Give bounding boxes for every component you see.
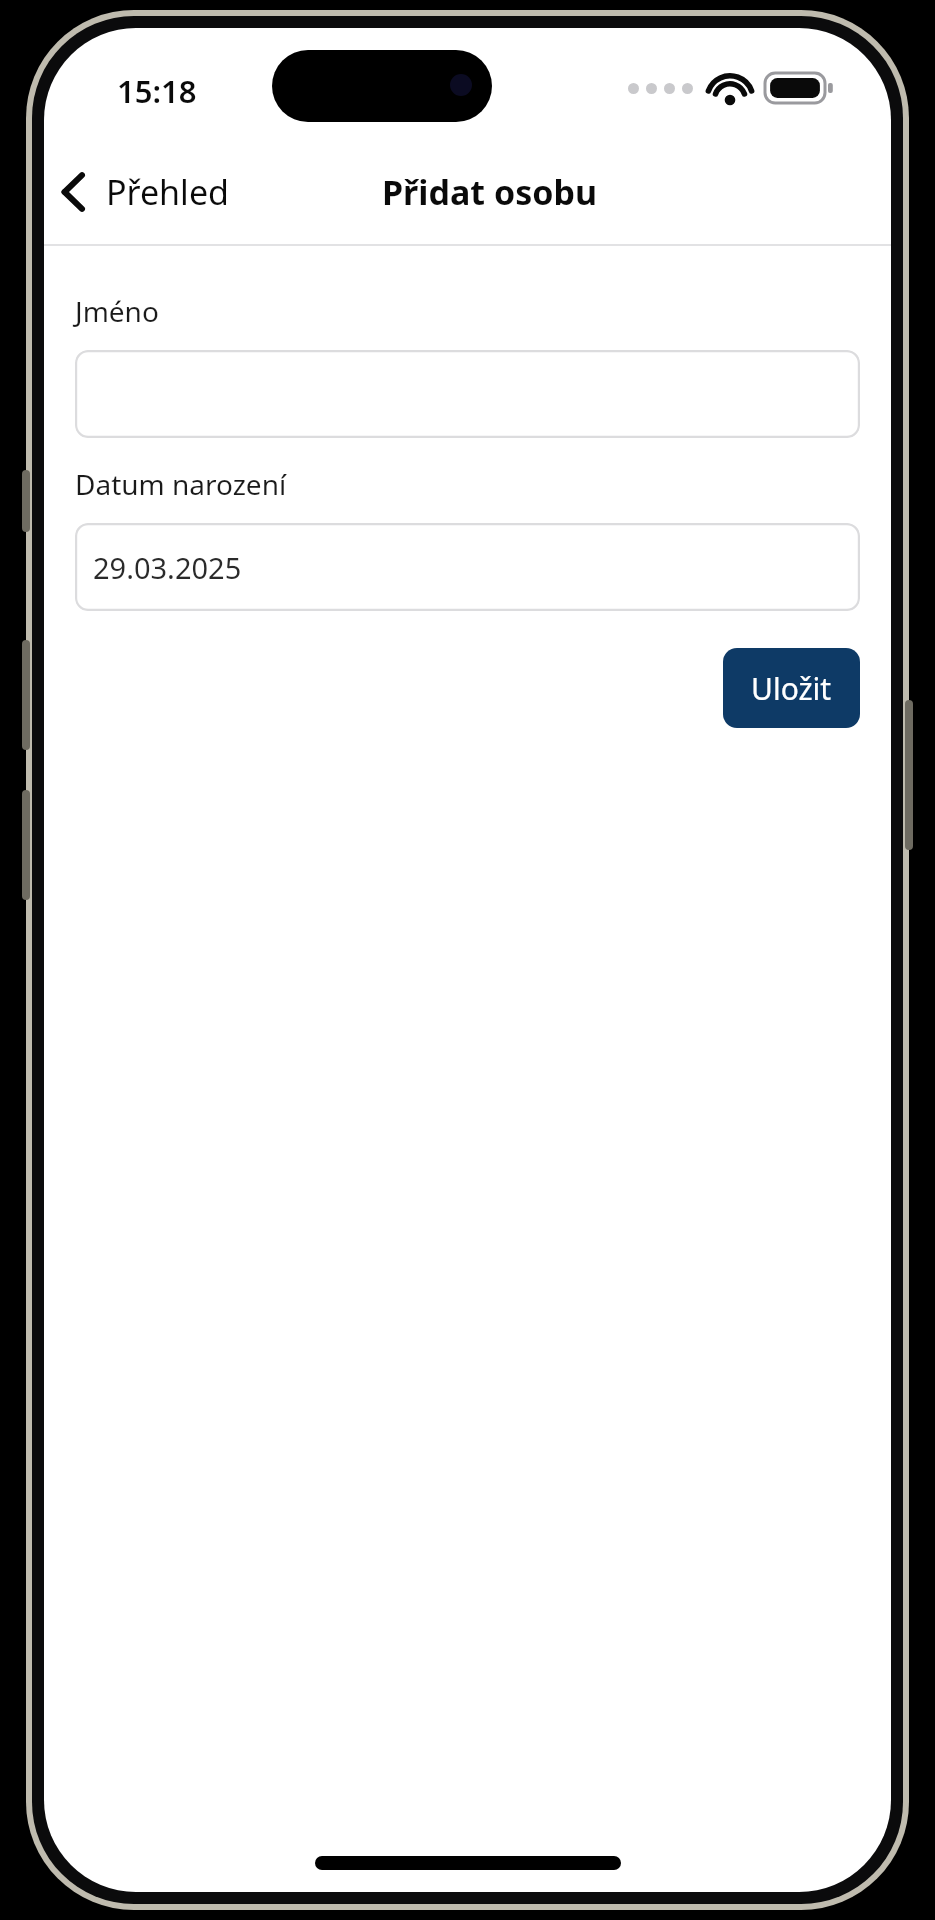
- staticText: Jméno: [75, 292, 159, 330]
- staticText: 15:18: [117, 70, 197, 112]
- staticText: Přidat osobu: [382, 169, 598, 215]
- button[interactable]: [75, 350, 860, 438]
- button[interactable]: Přehled: [44, 159, 245, 225]
- staticText: Přehled: [106, 169, 229, 215]
- button[interactable]: 29.03.2025: [75, 523, 860, 611]
- staticText: Datum narození: [75, 465, 287, 503]
- staticText: 29.03.2025: [93, 548, 242, 587]
- button[interactable]: Uložit: [723, 648, 860, 728]
- staticText: Uložit: [751, 668, 832, 709]
